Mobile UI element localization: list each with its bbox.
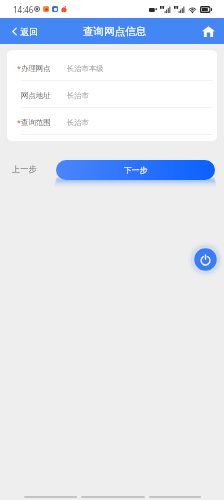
staticText: 查询范围 (21, 118, 51, 127)
button[interactable]: 下一步 (56, 160, 215, 180)
button[interactable]: 网点地址 (7, 81, 217, 107)
staticText: * (17, 118, 21, 128)
staticText: 返回 (20, 26, 38, 37)
staticText: 14:46 (13, 4, 34, 15)
staticText: 下一步 (124, 165, 148, 175)
button[interactable]: 返回 (0, 22, 46, 41)
button[interactable]: 上一步 (0, 156, 45, 182)
staticText: 长治市 (67, 118, 89, 127)
button[interactable]: * (7, 54, 217, 80)
staticText: 办理网点 (21, 64, 51, 73)
staticText: 长治市 (67, 91, 89, 100)
staticText: * (17, 64, 21, 74)
staticText: 查询网点信息 (83, 25, 146, 38)
button[interactable]: * (7, 108, 217, 134)
staticText: 长治市本级 (67, 64, 104, 73)
staticText: 上一步 (12, 164, 37, 174)
staticText: 网点地址 (21, 91, 51, 100)
button[interactable]: Power (188, 242, 223, 277)
button[interactable]: Home (194, 22, 224, 41)
